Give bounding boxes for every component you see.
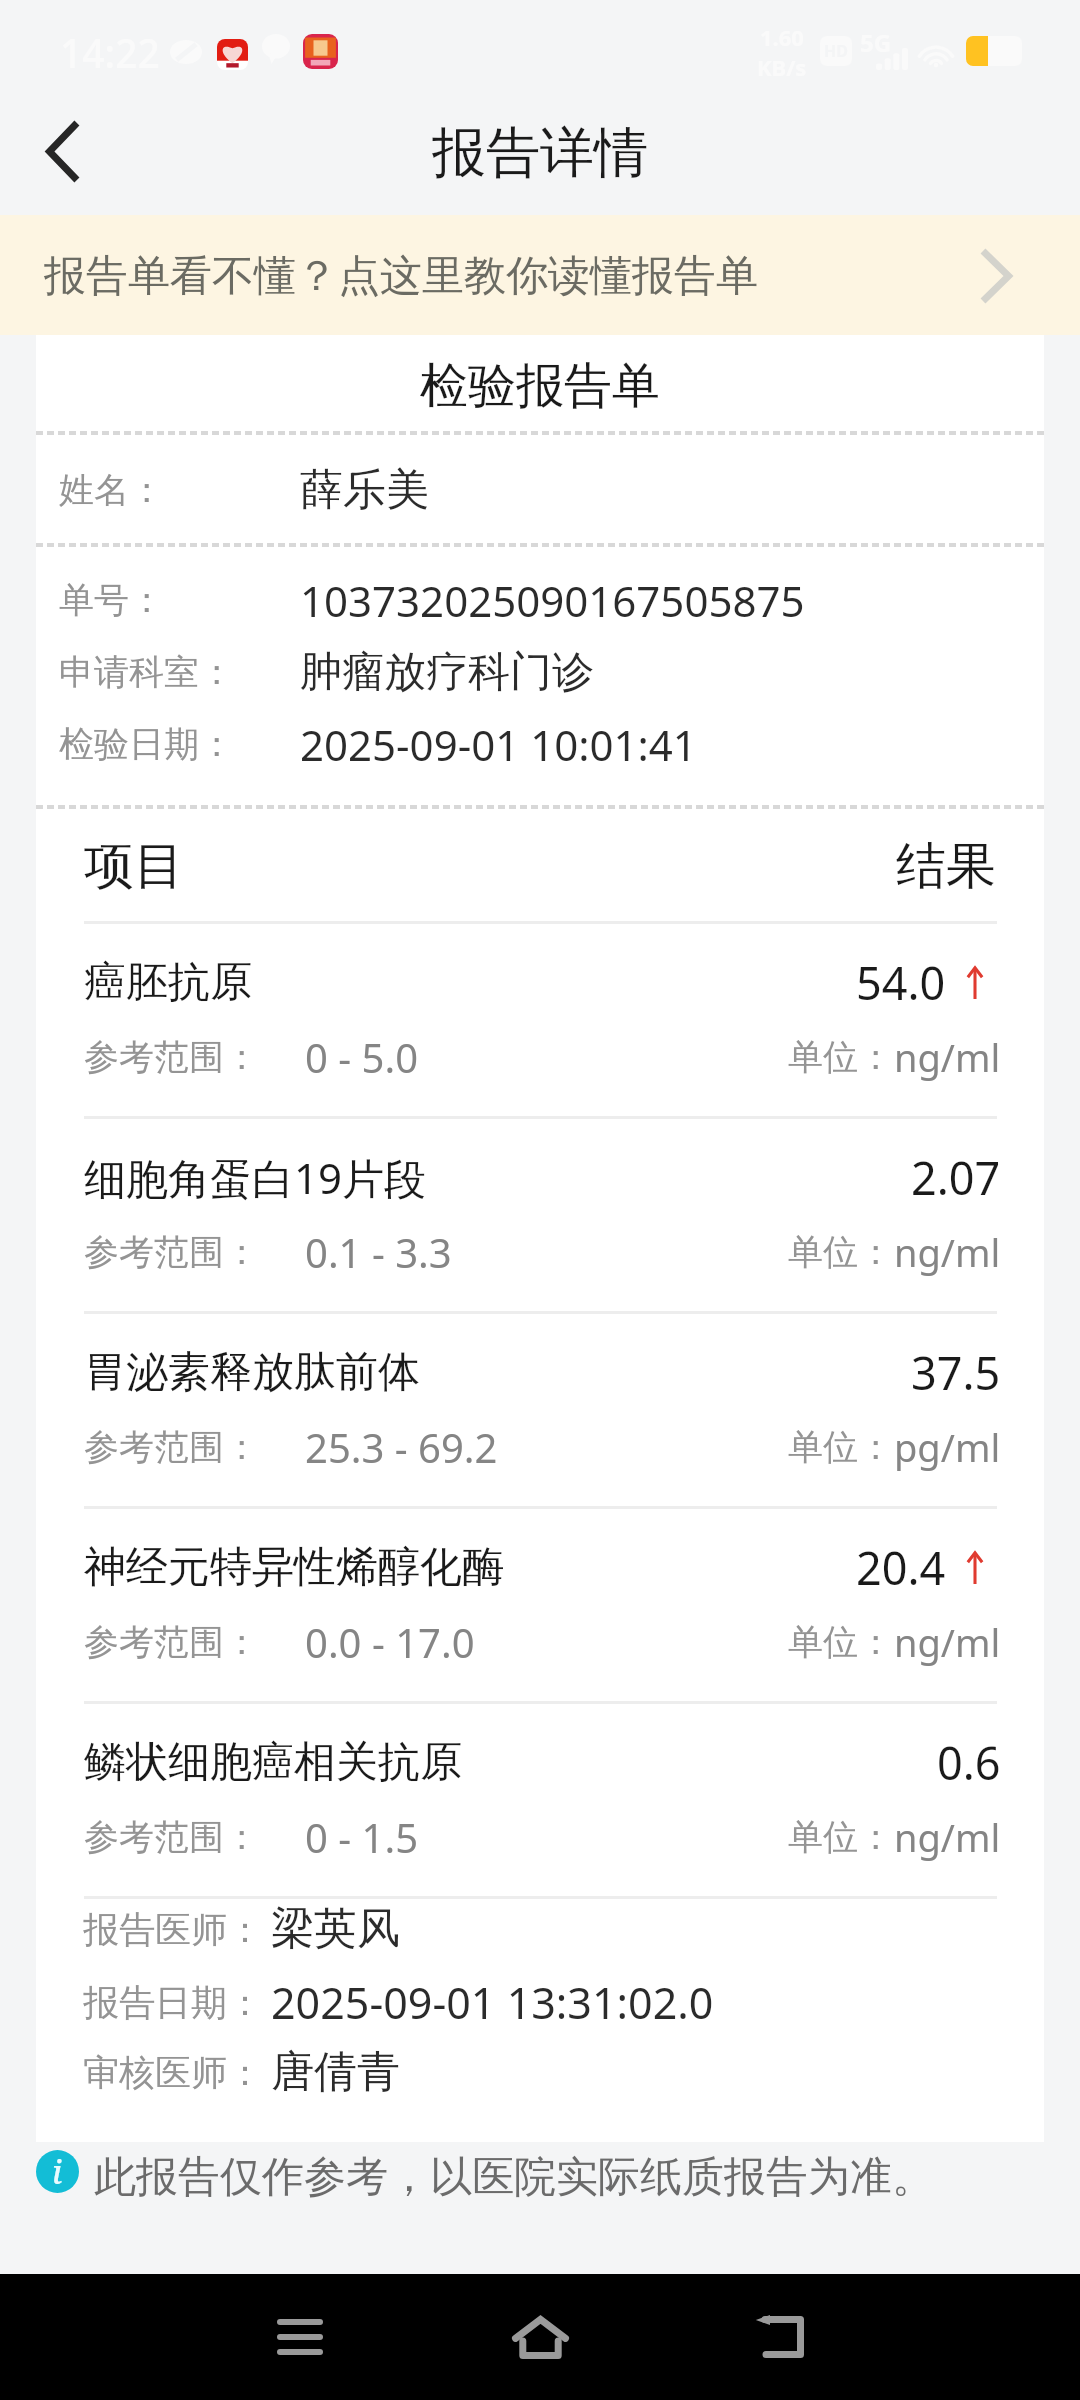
- staticText: 54.0: [856, 952, 946, 1013]
- button[interactable]: Home: [480, 2274, 600, 2400]
- button[interactable]: 细胞角蛋白19片段: [84, 1119, 1001, 1311]
- staticText: 报告日期：: [83, 1980, 263, 2025]
- staticText: 25.3 - 69.2: [305, 1420, 498, 1474]
- staticText: 唐倩青: [271, 2045, 400, 2099]
- staticText: 姓名：: [59, 468, 164, 512]
- staticText: 项目: [84, 835, 184, 895]
- staticText: ng/ml: [894, 1031, 1001, 1083]
- staticText: 结果: [896, 835, 996, 895]
- staticText: 参考范围：: [84, 1425, 259, 1469]
- staticText: 20.4: [856, 1537, 946, 1598]
- staticText: 单号：: [59, 578, 164, 622]
- staticText: 2025-09-01 10:01:41: [300, 716, 697, 773]
- button[interactable]: Back: [22, 105, 102, 215]
- staticText: 单位：: [788, 1035, 893, 1079]
- staticText: 报告单看不懂？点这里教你读懂报告单: [44, 250, 758, 303]
- staticText: 鳞状细胞癌相关抗原: [84, 1736, 462, 1789]
- staticText: 申请科室：: [59, 650, 234, 694]
- staticText: 细胞角蛋白19片段: [84, 1149, 427, 1206]
- button[interactable]: Information: [36, 2150, 79, 2193]
- staticText: 参考范围：: [84, 1230, 259, 1274]
- staticText: 0 - 1.5: [305, 1810, 419, 1864]
- staticText: ng/ml: [894, 1226, 1001, 1278]
- staticText: 0 - 5.0: [305, 1030, 419, 1084]
- staticText: 2.07: [911, 1147, 1001, 1208]
- staticText: 单位：: [788, 1230, 893, 1274]
- staticText: 报告医师：: [83, 1907, 263, 1952]
- staticText: 胃泌素释放肽前体: [84, 1346, 420, 1399]
- staticText: 审核医师：: [83, 2050, 263, 2095]
- staticText: 此报告仅作参考，以医院实际纸质报告为准。: [94, 2151, 934, 2204]
- staticText: 报告详情: [432, 119, 648, 187]
- button[interactable]: 神经元特异性烯醇化酶: [84, 1509, 1001, 1701]
- staticText: 梁英风: [271, 1902, 400, 1956]
- staticText: pg/ml: [894, 1421, 1001, 1473]
- button[interactable]: Recent apps: [240, 2274, 360, 2400]
- button[interactable]: 胃泌素释放肽前体: [84, 1314, 1001, 1506]
- staticText: 单位：: [788, 1620, 893, 1664]
- staticText: 103732025090167505875: [300, 572, 805, 629]
- staticText: 37.5: [911, 1342, 1001, 1403]
- staticText: 肿瘤放疗科门诊: [300, 646, 594, 699]
- staticText: ng/ml: [894, 1811, 1001, 1863]
- staticText: 单位：: [788, 1815, 893, 1859]
- button[interactable]: Back: [720, 2274, 840, 2400]
- staticText: 0.0 - 17.0: [305, 1615, 475, 1669]
- staticText: 参考范围：: [84, 1035, 259, 1079]
- button[interactable]: 鳞状细胞癌相关抗原: [84, 1704, 1001, 1896]
- staticText: 薛乐美: [300, 463, 429, 517]
- button[interactable]: 癌胚抗原: [84, 924, 1001, 1116]
- staticText: 检验报告单: [420, 356, 660, 412]
- staticText: 0.6: [937, 1732, 1001, 1793]
- staticText: 参考范围：: [84, 1815, 259, 1859]
- staticText: ng/ml: [894, 1616, 1001, 1668]
- staticText: 0.1 - 3.3: [305, 1225, 452, 1279]
- staticText: 参考范围：: [84, 1620, 259, 1664]
- staticText: 单位：: [788, 1425, 893, 1469]
- staticText: 神经元特异性烯醇化酶: [84, 1541, 504, 1594]
- staticText: 2025-09-01 13:31:02.0: [271, 1973, 714, 2032]
- staticText: i: [52, 2150, 63, 2193]
- staticText: 检验日期：: [59, 722, 234, 766]
- staticText: 癌胚抗原: [84, 956, 252, 1009]
- button[interactable]: 报告单看不懂？点这里教你读懂报告单: [0, 215, 1080, 335]
